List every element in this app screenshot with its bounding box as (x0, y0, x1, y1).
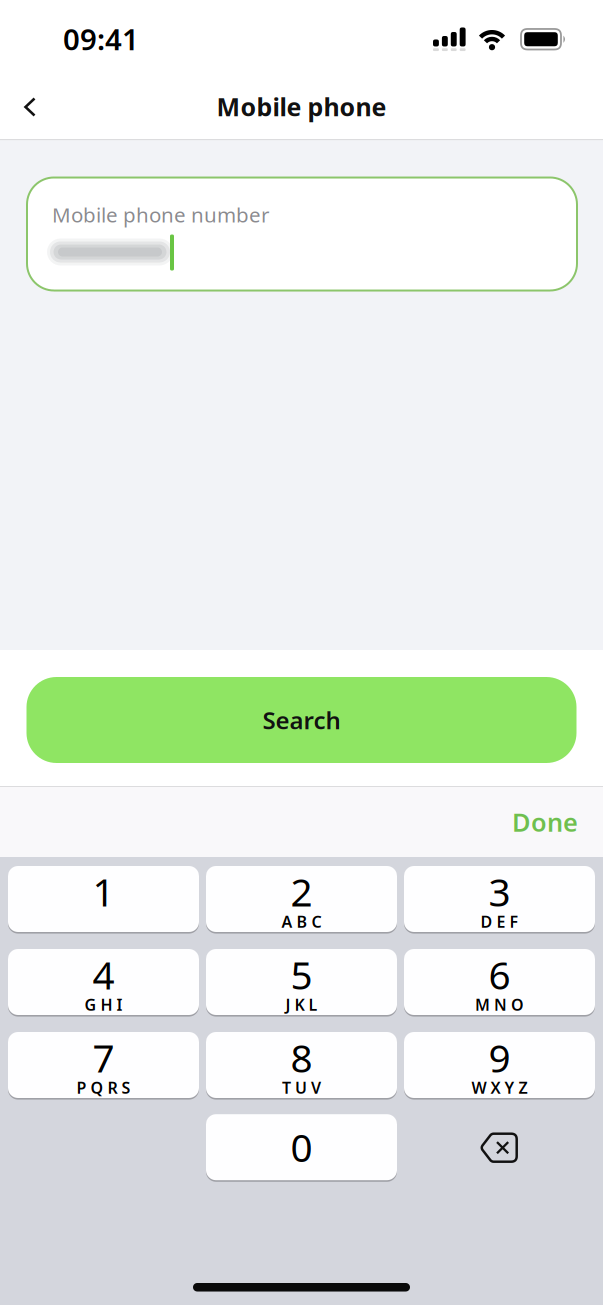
button[interactable]: 6 (404, 949, 595, 1015)
button[interactable]: 3 (404, 866, 595, 932)
staticText: 0 (290, 1121, 312, 1173)
button[interactable]: 8 (206, 1032, 397, 1098)
staticText: 9 (488, 1031, 510, 1084)
button[interactable]: 5 (206, 949, 397, 1015)
staticText: M N O (475, 994, 524, 1015)
button[interactable]: Done (512, 787, 603, 857)
staticText: 09:41 (63, 19, 139, 59)
button[interactable]: 7 (8, 1032, 199, 1098)
staticText: 1 (92, 865, 114, 918)
staticText: 5 (290, 948, 312, 1001)
staticText: A B C (281, 911, 321, 932)
button[interactable]: 0 (206, 1115, 397, 1181)
button[interactable]: 1 (8, 866, 199, 932)
staticText: P Q R S (76, 1077, 130, 1098)
staticText: Done (512, 805, 578, 839)
staticText: D E F (480, 911, 518, 932)
staticText: 3 (488, 865, 510, 918)
button[interactable]: Delete (404, 1115, 595, 1181)
staticText: 6 (488, 948, 510, 1001)
staticText: J K L (285, 994, 317, 1015)
staticText: G H I (84, 994, 122, 1015)
staticText: 2 (290, 865, 312, 918)
staticText: 7 (92, 1031, 114, 1084)
button[interactable]: 2 (206, 866, 397, 932)
staticText: Mobile phone (216, 89, 386, 123)
button[interactable]: Search (26, 677, 576, 763)
staticText: 4 (92, 948, 114, 1001)
staticText: Mobile phone number (52, 200, 269, 228)
button[interactable]: 4 (8, 949, 199, 1015)
staticText: Search (262, 704, 340, 736)
staticText: W X Y Z (471, 1077, 527, 1098)
button[interactable]: 9 (404, 1032, 595, 1098)
staticText: 8 (290, 1031, 312, 1084)
staticText: T U V (282, 1077, 321, 1098)
button[interactable]: Back (0, 64, 36, 139)
